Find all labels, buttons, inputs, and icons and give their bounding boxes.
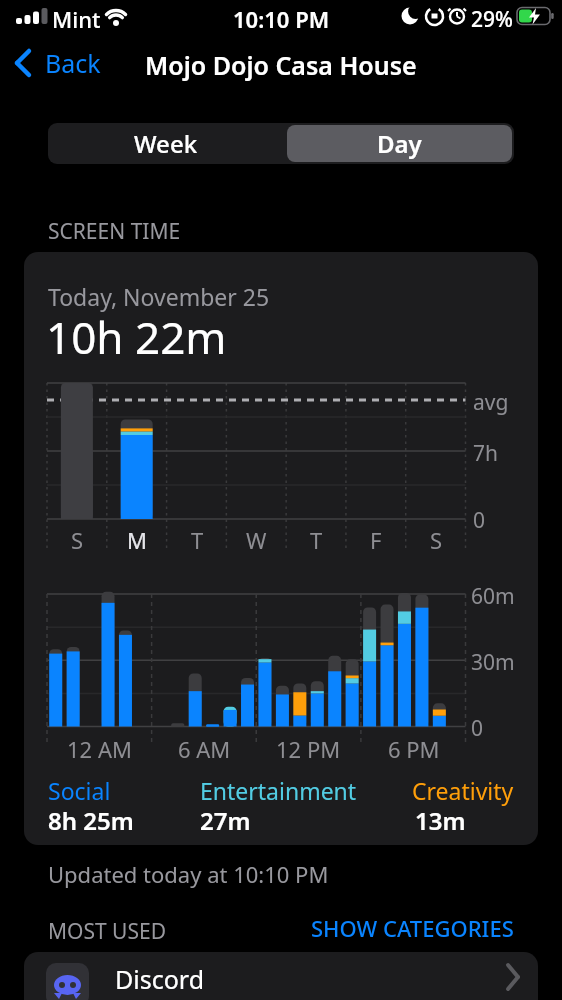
staticText: SCREEN TIME <box>48 217 181 246</box>
staticText: 10h 22m <box>46 307 227 367</box>
staticText: M <box>127 525 147 555</box>
staticText: Day <box>377 127 422 160</box>
staticText: 6 AM <box>178 734 231 764</box>
staticText: S <box>430 525 443 555</box>
staticText: Today, November 25 <box>48 281 270 312</box>
staticText: SHOW CATEGORIES <box>311 913 514 943</box>
staticText: 13m <box>415 804 466 837</box>
staticText: Week <box>134 127 198 160</box>
button[interactable]: Back <box>10 45 120 83</box>
staticText: 60m <box>471 582 515 611</box>
staticText: F <box>370 525 382 555</box>
staticText: W <box>246 525 267 555</box>
staticText: 0 <box>473 506 486 535</box>
staticText: avg <box>473 388 509 417</box>
staticText: 30m <box>471 648 515 677</box>
staticText: Entertainment <box>200 775 357 806</box>
staticText: Mint <box>52 4 101 34</box>
staticText: 7h <box>473 439 498 468</box>
staticText: Mojo Dojo Casa House <box>145 48 417 82</box>
staticText: 8h 25m <box>48 804 134 837</box>
staticText: 0 <box>471 714 484 743</box>
staticText: S <box>71 525 84 555</box>
staticText: 10:10 PM <box>233 4 330 34</box>
button[interactable]: Day <box>287 125 512 162</box>
staticText: T <box>310 525 323 555</box>
staticText: Discord <box>115 962 205 996</box>
staticText: Back <box>45 46 101 80</box>
staticText: Social <box>48 775 111 806</box>
button[interactable]: Week <box>50 125 281 162</box>
staticText: 29% <box>471 5 513 34</box>
staticText: T <box>191 525 204 555</box>
staticText: Creativity <box>412 775 514 806</box>
button[interactable] <box>24 952 538 1000</box>
staticText: 6 PM <box>388 734 440 764</box>
staticText: 27m <box>200 804 251 837</box>
staticText: 12 AM <box>67 734 132 764</box>
staticText: 12 PM <box>276 734 341 764</box>
staticText: Updated today at 10:10 PM <box>48 859 329 889</box>
button[interactable]: SHOW CATEGORIES <box>300 913 514 943</box>
staticText: MOST USED <box>48 917 166 946</box>
